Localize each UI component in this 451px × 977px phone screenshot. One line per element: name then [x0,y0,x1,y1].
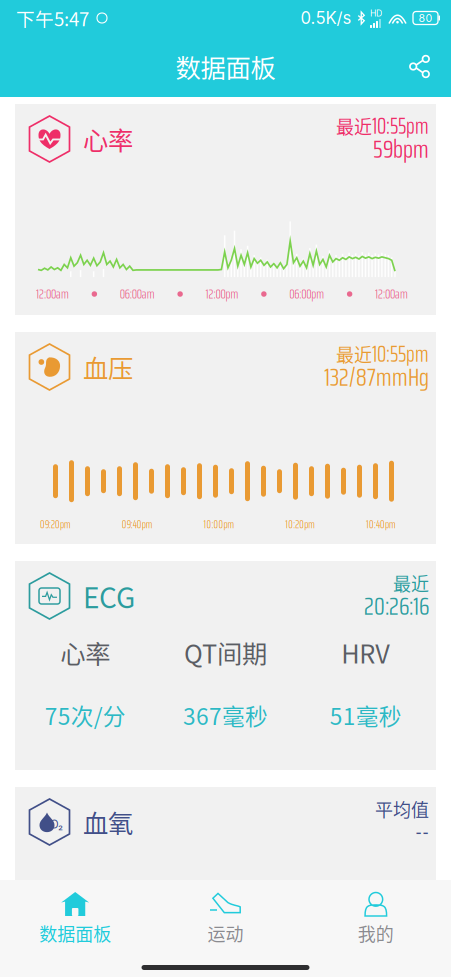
staticText: 09:40pm [122,516,153,533]
staticText: 最近 [393,570,429,596]
staticText: HD [370,8,382,18]
staticText: O₂ [50,818,63,831]
staticText: 20:26:16 [364,586,429,626]
staticText: 10:20pm [285,516,315,533]
staticText: 51毫秒 [330,699,402,731]
staticText: 平均值 [375,796,429,822]
staticText: 血氧 [83,804,133,840]
staticText: 心率 [60,634,110,671]
staticText: 血压 [83,349,133,385]
staticText: 10:55pm [372,109,429,143]
staticText: 09:20pm [40,516,71,533]
staticText: 80 [418,11,432,24]
button[interactable]: 运动 [150,880,301,955]
staticText: 12:00am [375,284,408,304]
staticText: 06:00am [120,284,155,304]
staticText: QT间期 [184,634,267,671]
staticText: 数据面板 [39,920,111,946]
button[interactable]: 数据面板 [0,880,150,955]
button[interactable]: 我的 [301,880,451,955]
staticText: HRV [341,634,390,671]
staticText: ECG [83,576,135,616]
staticText: 12:00pm [205,284,238,304]
staticText: 最近 [336,341,372,367]
button[interactable]: 分享 [395,42,444,90]
staticText: 06:00pm [289,284,324,304]
staticText: 10:00pm [203,516,234,533]
staticText: 10:55pm [372,337,429,371]
staticText: 75次/分 [45,699,126,731]
staticText: 0.5K/s [300,8,351,28]
staticText: 12:00am [36,284,69,304]
staticText: 心率 [83,121,133,157]
staticText: 运动 [207,920,243,946]
staticText: 数据面板 [175,48,275,85]
staticText: 59bpm [373,129,429,169]
staticText: 我的 [358,920,394,946]
staticText: 10:40pm [366,516,396,533]
staticText: 下午5:47 [16,4,89,31]
staticText: 最近 [336,113,372,139]
staticText: 367毫秒 [183,699,268,731]
staticText: -- [415,812,429,852]
staticText: 132/87mmHg [324,357,429,397]
